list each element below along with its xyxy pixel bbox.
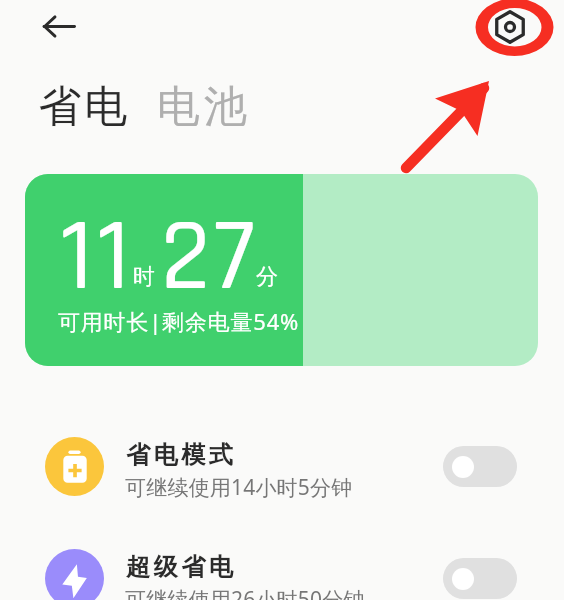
staticText: 省电模式 bbox=[126, 440, 237, 470]
button[interactable]: Back bbox=[37, 7, 77, 47]
button[interactable]: 超级省电 bbox=[0, 549, 564, 600]
button[interactable]: 省电模式 bbox=[0, 437, 564, 499]
staticText: 省电 bbox=[37, 80, 129, 134]
staticText: 电池 bbox=[155, 80, 249, 134]
staticText: 分 bbox=[256, 263, 278, 291]
staticText: 可用时长|剩余电量54% bbox=[58, 306, 300, 336]
button[interactable]: 省电模式 bbox=[443, 446, 517, 487]
staticText: 27 bbox=[161, 193, 259, 323]
button[interactable]: 省电 bbox=[30, 76, 136, 138]
button[interactable]: 超级省电 bbox=[443, 558, 517, 599]
staticText: 11 bbox=[60, 193, 134, 323]
staticText: 超级省电 bbox=[126, 552, 237, 582]
staticText: 可继续使用14小时5分钟 bbox=[125, 473, 353, 502]
staticText: 时 bbox=[133, 263, 155, 291]
button[interactable]: Settings bbox=[490, 7, 530, 47]
staticText: 可继续使用26小时50分钟 bbox=[125, 585, 365, 600]
button[interactable]: 11 bbox=[25, 174, 538, 366]
button[interactable]: 电池 bbox=[148, 76, 256, 138]
